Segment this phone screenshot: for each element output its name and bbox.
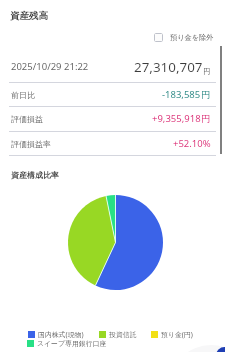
staticText: 27,310,707 [134, 58, 203, 76]
button[interactable]: 評価損益 [0, 106, 225, 131]
staticText: 国内株式(現物) [38, 330, 84, 339]
button[interactable]: 投資信託 [99, 330, 137, 339]
button[interactable]: 預り金(円) [151, 330, 193, 339]
staticText: 預り金(円) [161, 330, 193, 339]
button[interactable]: スイープ専用銀行口座 [27, 339, 107, 348]
button[interactable]: Unread messages [216, 347, 225, 352]
staticText: +9,355,918 [152, 112, 201, 125]
button[interactable]: 前日比 [0, 82, 225, 107]
staticText: 2025/10/29 21:22 [11, 60, 89, 73]
button[interactable]: 預り金を除外 [154, 33, 214, 42]
staticText: 円 [201, 113, 211, 125]
staticText: 前日比 [11, 90, 35, 100]
button[interactable]: 資産残高 [10, 10, 48, 22]
staticText: -183,585 [162, 88, 201, 101]
staticText: 円 [201, 89, 211, 101]
staticText: 円 [203, 67, 211, 76]
staticText: +52.10% [173, 137, 211, 150]
staticText: スイープ専用銀行口座 [37, 339, 107, 348]
staticText: 評価損益 [11, 114, 43, 124]
staticText: 資産構成比率 [11, 170, 59, 180]
staticText: 投資信託 [109, 330, 137, 339]
button[interactable]: Asset allocation pie chart [68, 195, 163, 290]
staticText: 評価損益率 [11, 139, 51, 149]
staticText: 預り金を除外 [170, 33, 214, 42]
button[interactable]: 評価損益率 [0, 131, 225, 156]
button[interactable]: Chat support [169, 345, 225, 352]
button[interactable]: 国内株式(現物) [28, 330, 84, 339]
button[interactable]: 2025/10/29 21:22 [0, 54, 225, 79]
